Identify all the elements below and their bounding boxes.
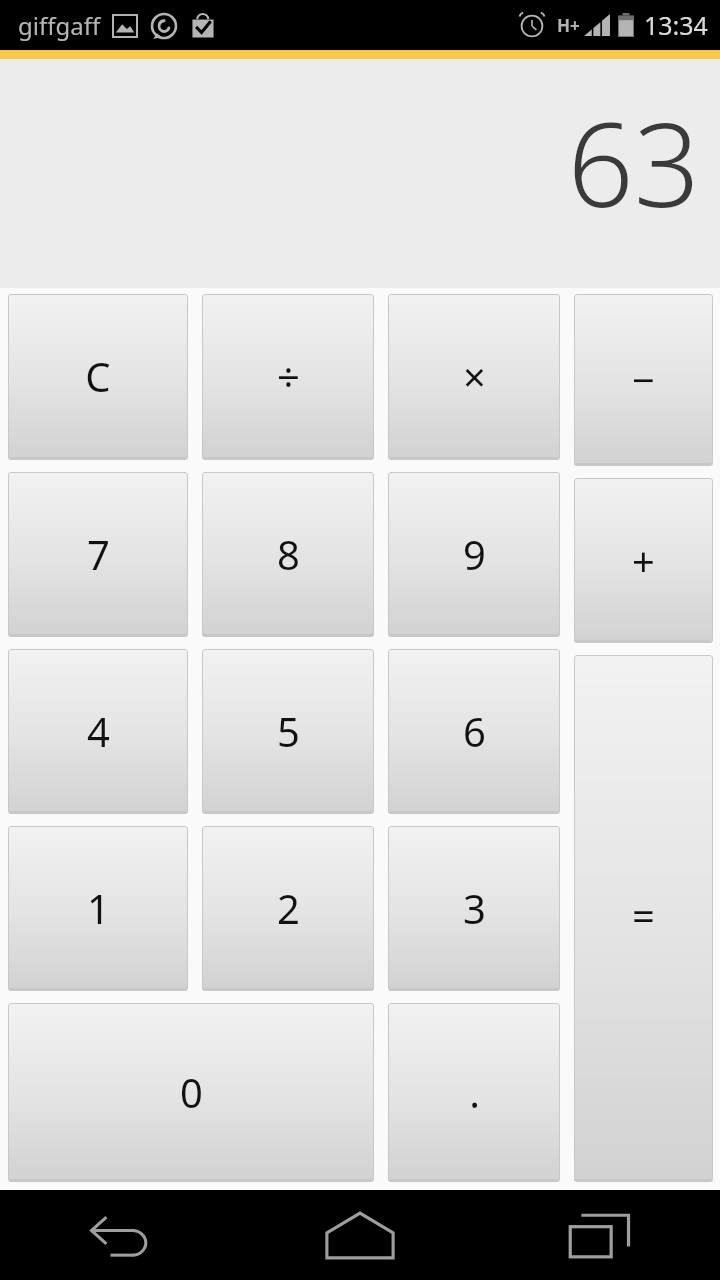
button[interactable]: 2 xyxy=(202,826,374,989)
staticText: 2 xyxy=(277,881,300,935)
button[interactable]: = xyxy=(574,655,713,1180)
button[interactable]: 7 xyxy=(8,472,188,635)
staticText: 3 xyxy=(463,881,486,935)
button[interactable]: 6 xyxy=(388,649,560,812)
button[interactable]: − xyxy=(574,294,713,464)
staticText: 4 xyxy=(87,704,110,758)
staticText: . xyxy=(469,1065,480,1119)
button[interactable]: 8 xyxy=(202,472,374,635)
button[interactable]: 0 xyxy=(8,1003,374,1180)
staticText: − xyxy=(632,352,655,406)
staticText: 9 xyxy=(463,527,486,581)
staticText: 0 xyxy=(180,1065,203,1119)
button[interactable]: Recent apps xyxy=(480,1190,720,1280)
staticText: × xyxy=(463,349,486,403)
staticText: ÷ xyxy=(277,349,300,403)
button[interactable]: Back xyxy=(0,1190,240,1280)
button[interactable]: × xyxy=(388,294,560,458)
button[interactable]: 4 xyxy=(8,649,188,812)
button[interactable]: . xyxy=(388,1003,560,1180)
button[interactable]: + xyxy=(574,478,713,641)
staticText: = xyxy=(632,888,655,942)
staticText: + xyxy=(632,533,655,587)
staticText: H+ xyxy=(557,14,580,37)
button[interactable]: Home xyxy=(240,1190,480,1280)
staticText: 63 xyxy=(567,83,700,241)
staticText: 5 xyxy=(277,704,300,758)
staticText: 13:34 xyxy=(644,8,708,42)
staticText: 8 xyxy=(277,527,300,581)
button[interactable]: 3 xyxy=(388,826,560,989)
staticText: C xyxy=(85,349,111,403)
button[interactable]: 1 xyxy=(8,826,188,989)
staticText: giffgaff xyxy=(18,9,101,42)
button[interactable]: C xyxy=(8,294,188,458)
button[interactable]: 9 xyxy=(388,472,560,635)
staticText: 1 xyxy=(87,881,110,935)
button[interactable]: ÷ xyxy=(202,294,374,458)
staticText: 6 xyxy=(463,704,486,758)
staticText: 7 xyxy=(87,527,110,581)
button[interactable]: 5 xyxy=(202,649,374,812)
